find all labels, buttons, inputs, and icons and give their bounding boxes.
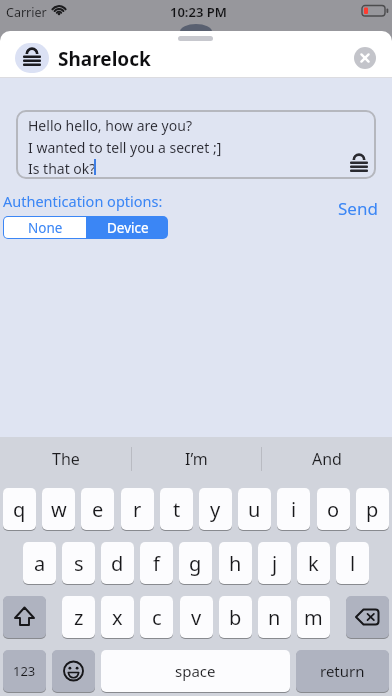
button[interactable]: x <box>101 596 134 638</box>
button[interactable]: space <box>101 650 290 692</box>
button[interactable]: d <box>101 542 134 584</box>
staticText: d <box>111 550 124 577</box>
button[interactable]: return <box>296 650 389 692</box>
button[interactable]: n <box>258 596 291 638</box>
button[interactable]: j <box>258 542 291 584</box>
staticText: Carrier <box>6 4 47 21</box>
staticText: h <box>229 550 242 577</box>
staticText: m <box>304 604 323 631</box>
staticText: t <box>173 496 181 523</box>
staticText: Device <box>107 219 149 237</box>
button[interactable]: None <box>4 217 86 238</box>
button[interactable]: 123 <box>3 650 46 692</box>
button[interactable] <box>52 650 95 692</box>
staticText: Sharelock <box>58 46 151 72</box>
staticText: 10:23 PM <box>170 3 227 21</box>
staticText: None <box>28 219 63 237</box>
button[interactable] <box>346 596 389 638</box>
button[interactable]: k <box>297 542 330 584</box>
staticText: return <box>320 661 365 681</box>
staticText: I’m <box>185 448 208 470</box>
staticText: v <box>191 604 202 631</box>
staticText: z <box>74 604 84 631</box>
button[interactable]: w <box>42 488 75 530</box>
staticText: i <box>291 496 297 523</box>
staticText: Hello hello, how are you? I wanted to te… <box>28 116 222 178</box>
button[interactable]: e <box>81 488 114 530</box>
staticText: q <box>13 496 26 523</box>
staticText: w <box>51 496 67 523</box>
button[interactable]: u <box>238 488 271 530</box>
button[interactable]: g <box>179 542 212 584</box>
staticText: Authentication options: <box>3 191 163 211</box>
button[interactable]: l <box>336 542 369 584</box>
button[interactable]: v <box>180 596 213 638</box>
button[interactable]: Device <box>87 217 168 238</box>
button[interactable]: c <box>140 596 173 638</box>
staticText: Send <box>338 197 378 220</box>
staticText: f <box>153 550 160 577</box>
button[interactable] <box>3 596 46 638</box>
staticText: l <box>350 550 356 577</box>
staticText: b <box>229 604 242 631</box>
staticText: The <box>52 448 80 470</box>
staticText: x <box>112 604 123 631</box>
staticText: u <box>248 496 261 523</box>
button[interactable]: t <box>160 488 193 530</box>
button[interactable] <box>354 47 376 69</box>
button[interactable]: r <box>121 488 154 530</box>
button[interactable]: q <box>3 488 36 530</box>
staticText: e <box>92 496 104 523</box>
button[interactable]: Hello hello, how are you? I wanted to te… <box>16 110 376 179</box>
button[interactable]: And <box>261 437 392 481</box>
button[interactable]: Send <box>338 197 378 220</box>
staticText: n <box>268 604 281 631</box>
button[interactable]: The <box>0 437 131 481</box>
button[interactable]: b <box>219 596 252 638</box>
staticText: s <box>74 550 84 577</box>
button[interactable]: h <box>219 542 252 584</box>
button[interactable]: p <box>356 488 389 530</box>
staticText: o <box>327 496 340 523</box>
staticText: r <box>133 496 142 523</box>
button[interactable]: f <box>140 542 173 584</box>
staticText: And <box>312 448 342 470</box>
button[interactable]: o <box>317 488 350 530</box>
staticText: c <box>152 604 162 631</box>
button[interactable]: y <box>199 488 232 530</box>
staticText: space <box>175 661 216 681</box>
staticText: g <box>189 550 202 577</box>
button[interactable]: m <box>297 596 330 638</box>
button[interactable]: z <box>62 596 95 638</box>
button[interactable]: s <box>62 542 95 584</box>
button[interactable]: a <box>23 542 56 584</box>
staticText: a <box>34 550 46 577</box>
staticText: j <box>272 550 278 577</box>
staticText: 123 <box>13 662 36 680</box>
staticText: p <box>366 496 379 523</box>
button[interactable]: i <box>277 488 310 530</box>
staticText: k <box>308 550 319 577</box>
button[interactable]: I’m <box>131 437 261 481</box>
staticText: y <box>210 496 221 523</box>
